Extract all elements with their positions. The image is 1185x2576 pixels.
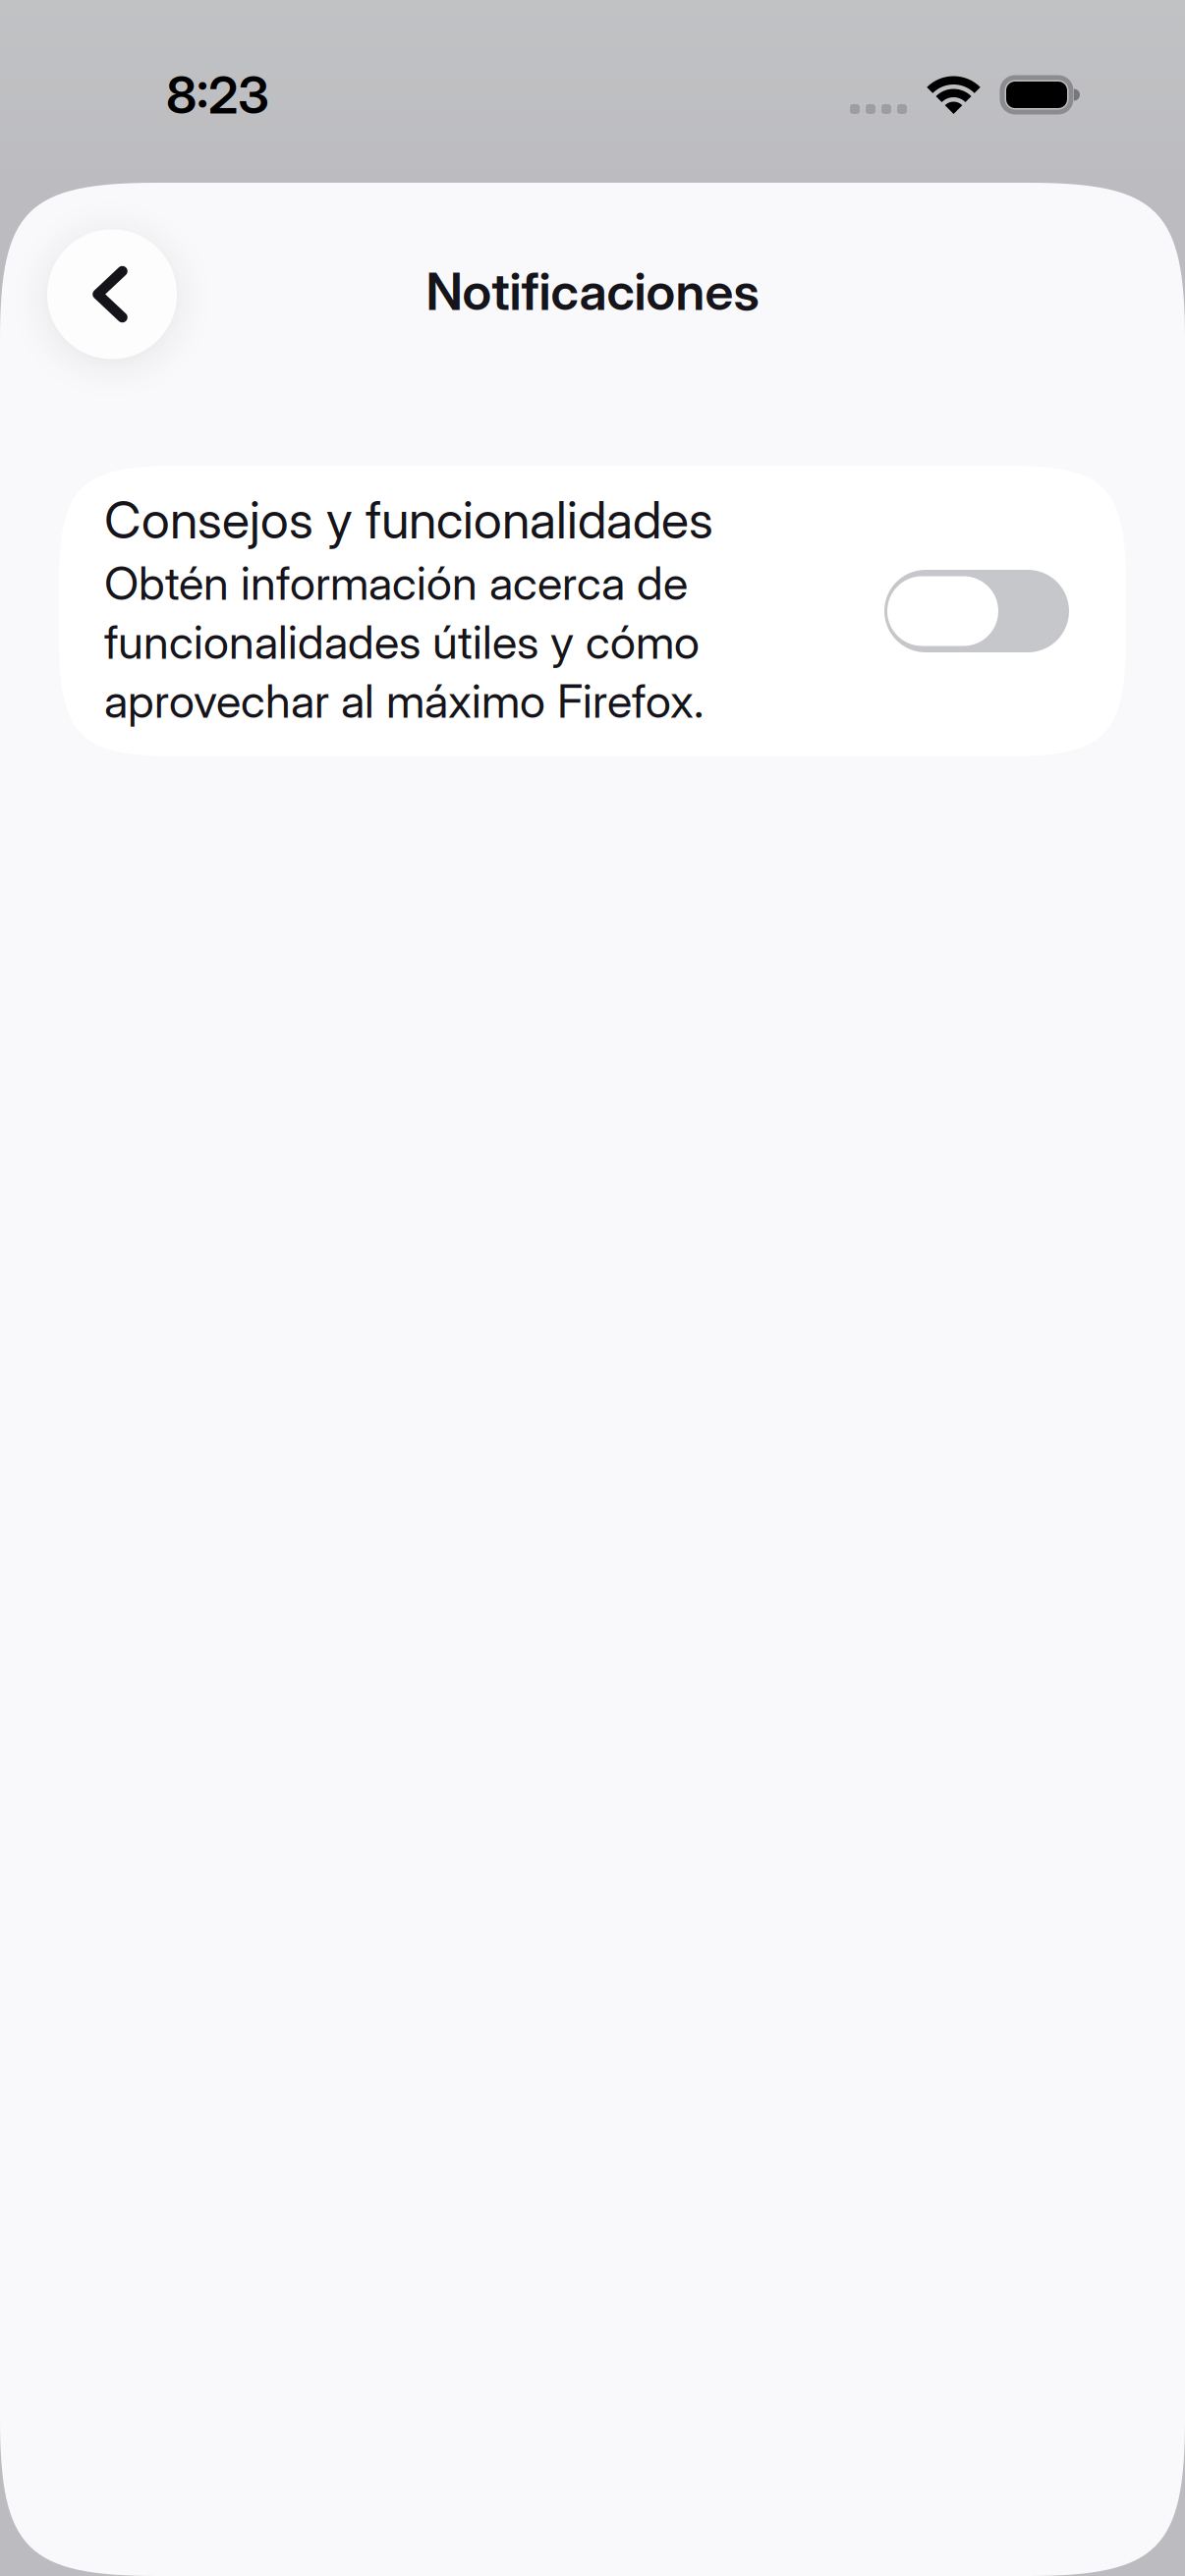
staticText: Notificaciones	[426, 260, 759, 322]
button[interactable]: Atrás	[47, 229, 177, 359]
staticText: Consejos y funcionalidades	[104, 489, 713, 551]
button[interactable]: Consejos y funcionalidades	[884, 570, 1069, 652]
staticText: aprovechar al máximo Firefox.	[104, 673, 704, 729]
staticText: funcionalidades útiles y cómo	[104, 614, 700, 670]
staticText: 8:23	[166, 64, 269, 126]
staticText: Obtén información acerca de	[104, 555, 688, 611]
